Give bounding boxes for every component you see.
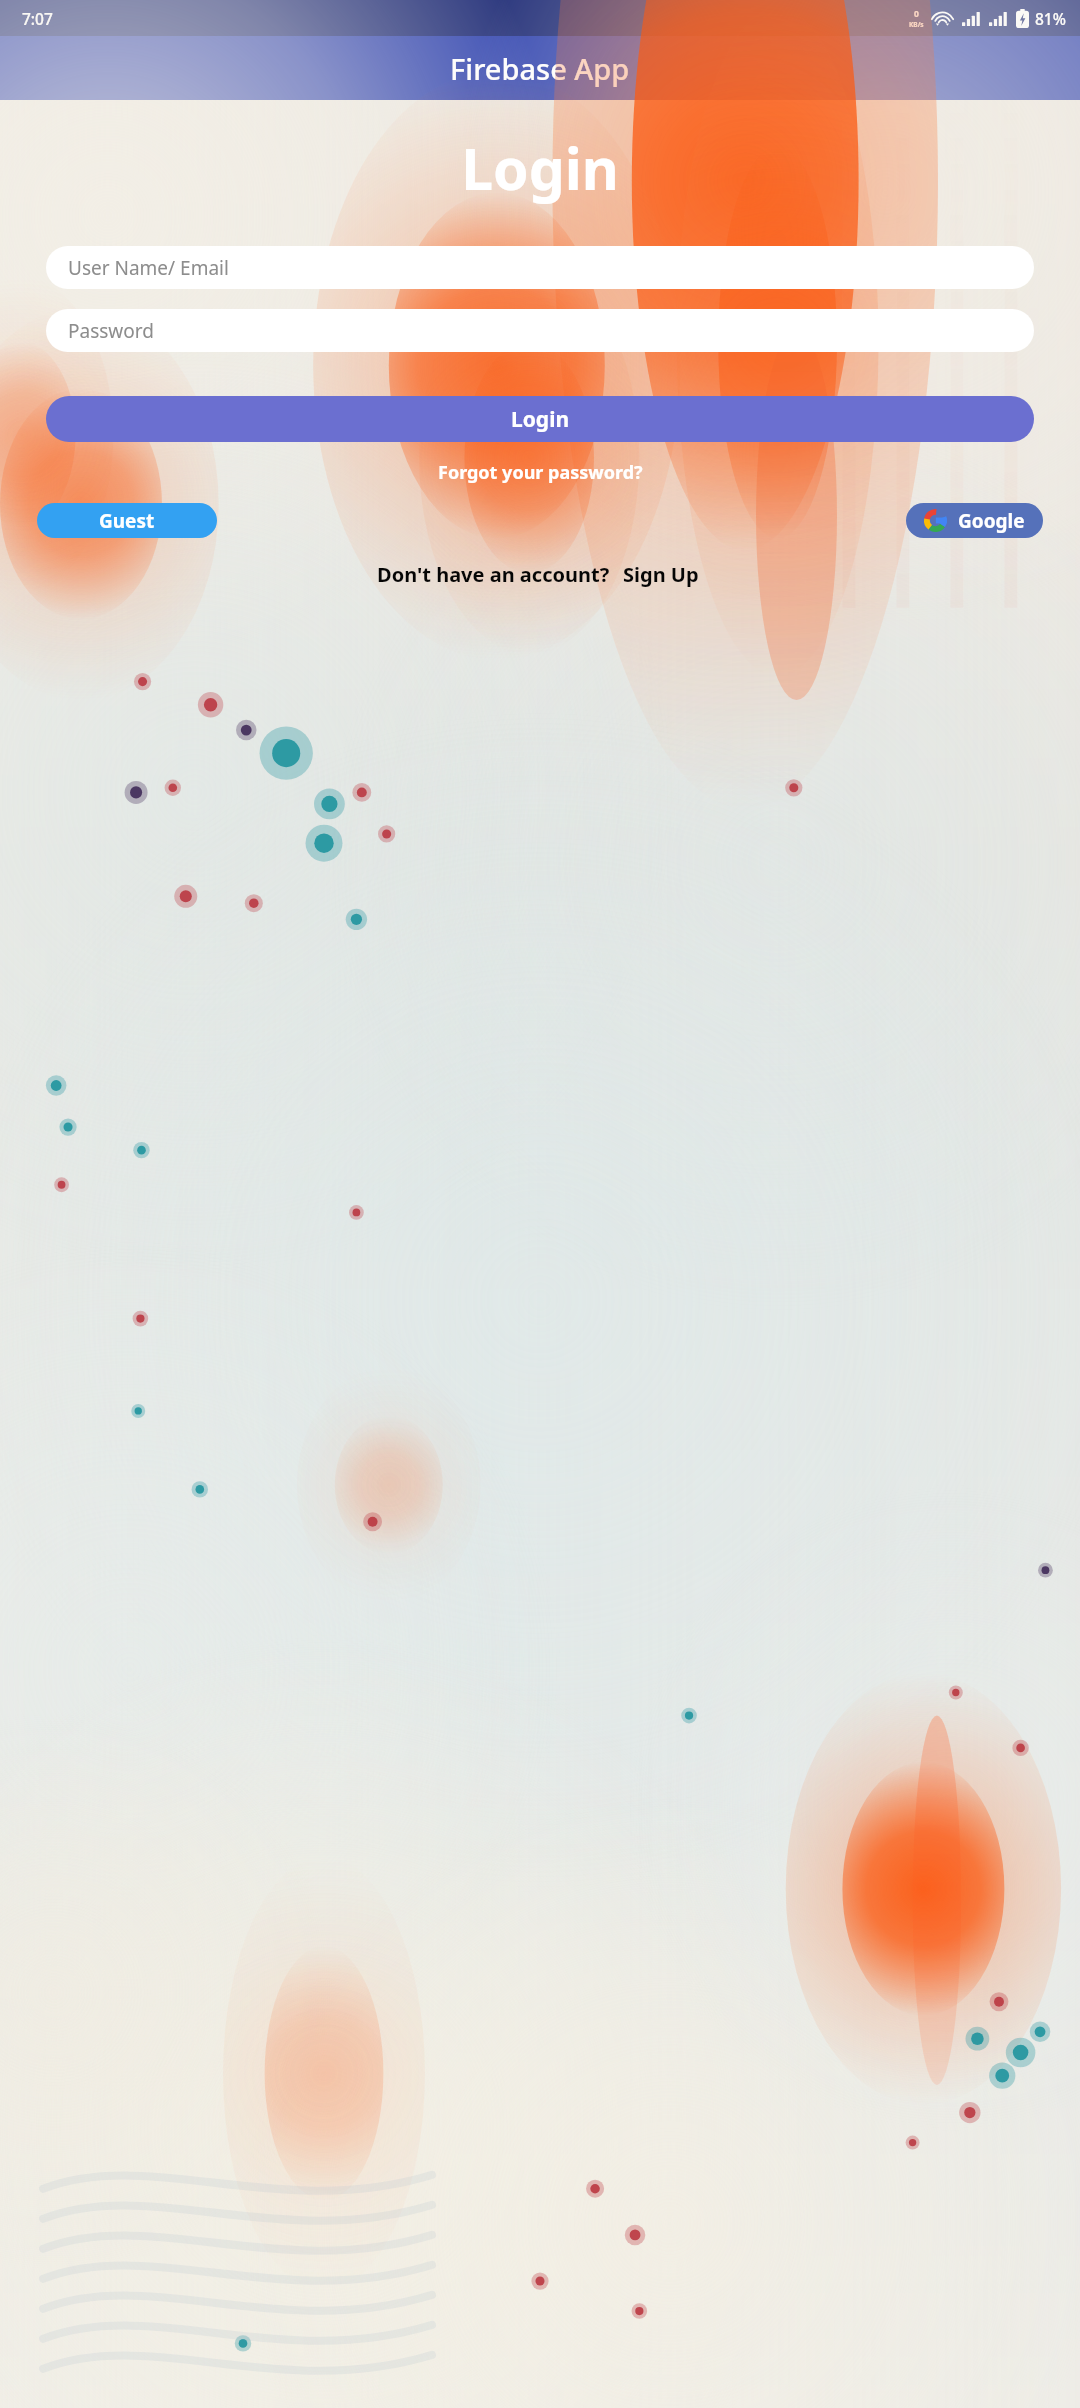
staticText: Login xyxy=(511,405,570,434)
button[interactable]: User Name/ Email xyxy=(46,246,1034,289)
staticText: Password xyxy=(68,318,154,344)
staticText: KB/s xyxy=(909,20,924,29)
other: Google xyxy=(924,509,947,532)
staticText: 0 xyxy=(914,8,919,20)
staticText: Google xyxy=(958,508,1025,534)
button[interactable]: Guest xyxy=(37,503,217,538)
button[interactable]: Google xyxy=(906,503,1043,538)
staticText: Sign Up xyxy=(623,561,699,588)
staticText: User Name/ Email xyxy=(68,255,229,281)
staticText: Guest xyxy=(99,508,155,534)
staticText: Don't have an account? xyxy=(377,561,610,588)
button[interactable]: Sign Up xyxy=(619,559,703,590)
staticText: 7:07 xyxy=(22,8,53,29)
button[interactable]: Login xyxy=(46,396,1034,442)
staticText: 81% xyxy=(1035,8,1066,29)
button[interactable]: Password xyxy=(46,309,1034,352)
button[interactable]: Forgot your password? xyxy=(432,458,649,487)
staticText: Forgot your password? xyxy=(438,460,643,485)
staticText: Firebase App xyxy=(450,49,630,88)
staticText: Login xyxy=(461,129,619,207)
